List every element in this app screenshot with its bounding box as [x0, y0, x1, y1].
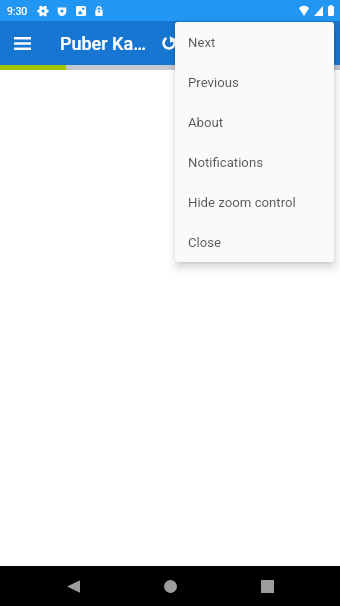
button[interactable]: Previous — [175, 62, 334, 102]
button[interactable]: Recent apps — [243, 566, 291, 606]
button[interactable]: About — [175, 102, 334, 142]
staticText: About — [188, 115, 224, 130]
staticText: Puber Ka… — [60, 33, 146, 54]
staticText: Previous — [188, 75, 239, 90]
button[interactable]: Close — [175, 222, 334, 262]
staticText: Next — [188, 35, 216, 50]
button[interactable]: Notifications — [175, 142, 334, 182]
staticText: Close — [188, 235, 222, 250]
button[interactable]: Refresh — [148, 21, 190, 65]
button[interactable]: Hide zoom control — [175, 182, 334, 222]
button[interactable]: Next — [175, 22, 334, 62]
button[interactable]: Home — [146, 566, 194, 606]
staticText: Notifications — [188, 155, 263, 170]
button[interactable]: Navigation menu — [0, 21, 44, 65]
staticText: 9:30 — [7, 5, 28, 17]
button[interactable]: More options — [300, 21, 340, 65]
button[interactable]: Back — [49, 566, 97, 606]
staticText: Hide zoom control — [188, 195, 296, 210]
